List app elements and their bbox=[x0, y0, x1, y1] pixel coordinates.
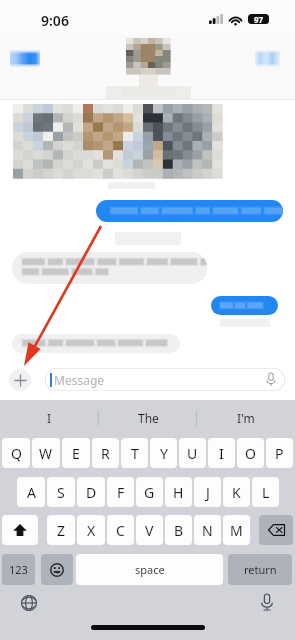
staticText: B bbox=[174, 521, 184, 540]
button[interactable]: P bbox=[266, 438, 293, 468]
button[interactable]: H bbox=[165, 477, 192, 507]
button[interactable]: Back bbox=[10, 50, 40, 67]
button[interactable]: Add attachment bbox=[9, 369, 31, 391]
button[interactable]: O bbox=[237, 438, 264, 468]
button[interactable]: V bbox=[136, 515, 163, 545]
staticText: E bbox=[72, 444, 80, 463]
staticText: O bbox=[245, 444, 256, 463]
staticText: F bbox=[117, 483, 125, 502]
button[interactable]: T bbox=[121, 438, 148, 468]
staticText: H bbox=[173, 483, 184, 502]
button[interactable]: Switch keyboard bbox=[18, 592, 39, 613]
button[interactable]: Z bbox=[47, 515, 75, 545]
button[interactable]: space bbox=[76, 554, 223, 585]
staticText: C bbox=[116, 521, 125, 540]
button[interactable]: F bbox=[107, 477, 134, 507]
staticText: P bbox=[275, 444, 284, 463]
staticText: A bbox=[27, 483, 36, 502]
button[interactable]: C bbox=[107, 515, 134, 545]
staticText: space bbox=[135, 562, 165, 577]
button[interactable]: S bbox=[47, 477, 75, 507]
staticText: R bbox=[101, 444, 110, 463]
button[interactable]: M bbox=[223, 515, 250, 545]
staticText: U bbox=[187, 444, 198, 463]
staticText: J bbox=[206, 483, 210, 502]
button[interactable]: 123 bbox=[2, 554, 35, 585]
staticText: Z bbox=[57, 521, 66, 540]
button[interactable]: I bbox=[0, 400, 99, 436]
button[interactable]: Emoji bbox=[41, 554, 73, 585]
staticText: M bbox=[230, 521, 243, 540]
button[interactable]: return bbox=[228, 554, 292, 585]
button[interactable]: I'm bbox=[197, 400, 295, 436]
button[interactable]: The bbox=[99, 400, 197, 436]
button[interactable]: K bbox=[223, 477, 250, 507]
staticText: 9:06 bbox=[41, 11, 69, 30]
button[interactable] bbox=[12, 252, 207, 284]
staticText: 123 bbox=[9, 562, 28, 577]
staticText: 97 bbox=[254, 14, 264, 24]
button[interactable]: A bbox=[17, 477, 45, 507]
button[interactable]: Y bbox=[150, 438, 177, 468]
button[interactable] bbox=[12, 334, 180, 353]
button[interactable]: Shift bbox=[2, 515, 38, 545]
button[interactable]: D bbox=[77, 477, 105, 507]
button[interactable] bbox=[96, 200, 283, 222]
staticText: T bbox=[131, 444, 139, 463]
button[interactable]: G bbox=[136, 477, 163, 507]
button[interactable]: R bbox=[92, 438, 119, 468]
button[interactable]: Message bbox=[45, 368, 285, 391]
button[interactable]: W bbox=[32, 438, 60, 468]
staticText: X bbox=[87, 521, 96, 540]
button[interactable]: Backspace bbox=[259, 515, 293, 545]
staticText: N bbox=[202, 521, 213, 540]
staticText: V bbox=[145, 521, 154, 540]
staticText: I'm bbox=[237, 410, 255, 426]
button[interactable]: E bbox=[62, 438, 90, 468]
staticText: K bbox=[232, 483, 241, 502]
staticText: The bbox=[138, 410, 159, 426]
staticText: S bbox=[57, 483, 65, 502]
button[interactable]: J bbox=[194, 477, 221, 507]
button[interactable]: Dictation bbox=[256, 592, 277, 613]
staticText: I bbox=[219, 444, 224, 463]
staticText: return bbox=[244, 562, 277, 577]
button[interactable] bbox=[211, 296, 278, 315]
staticText: Q bbox=[11, 444, 22, 463]
button[interactable]: I bbox=[208, 438, 235, 468]
staticText: W bbox=[39, 444, 53, 463]
staticText: I bbox=[47, 410, 52, 426]
button[interactable]: Q bbox=[2, 438, 30, 468]
button[interactable]: B bbox=[165, 515, 192, 545]
staticText: D bbox=[86, 483, 97, 502]
button[interactable]: X bbox=[77, 515, 105, 545]
button[interactable]: N bbox=[194, 515, 221, 545]
button[interactable]: Contact info bbox=[255, 50, 280, 67]
staticText: Message bbox=[54, 372, 105, 388]
button[interactable]: L bbox=[252, 477, 279, 507]
staticText: L bbox=[262, 483, 270, 502]
staticText: G bbox=[144, 483, 155, 502]
staticText: Y bbox=[160, 444, 168, 463]
button[interactable]: U bbox=[179, 438, 206, 468]
